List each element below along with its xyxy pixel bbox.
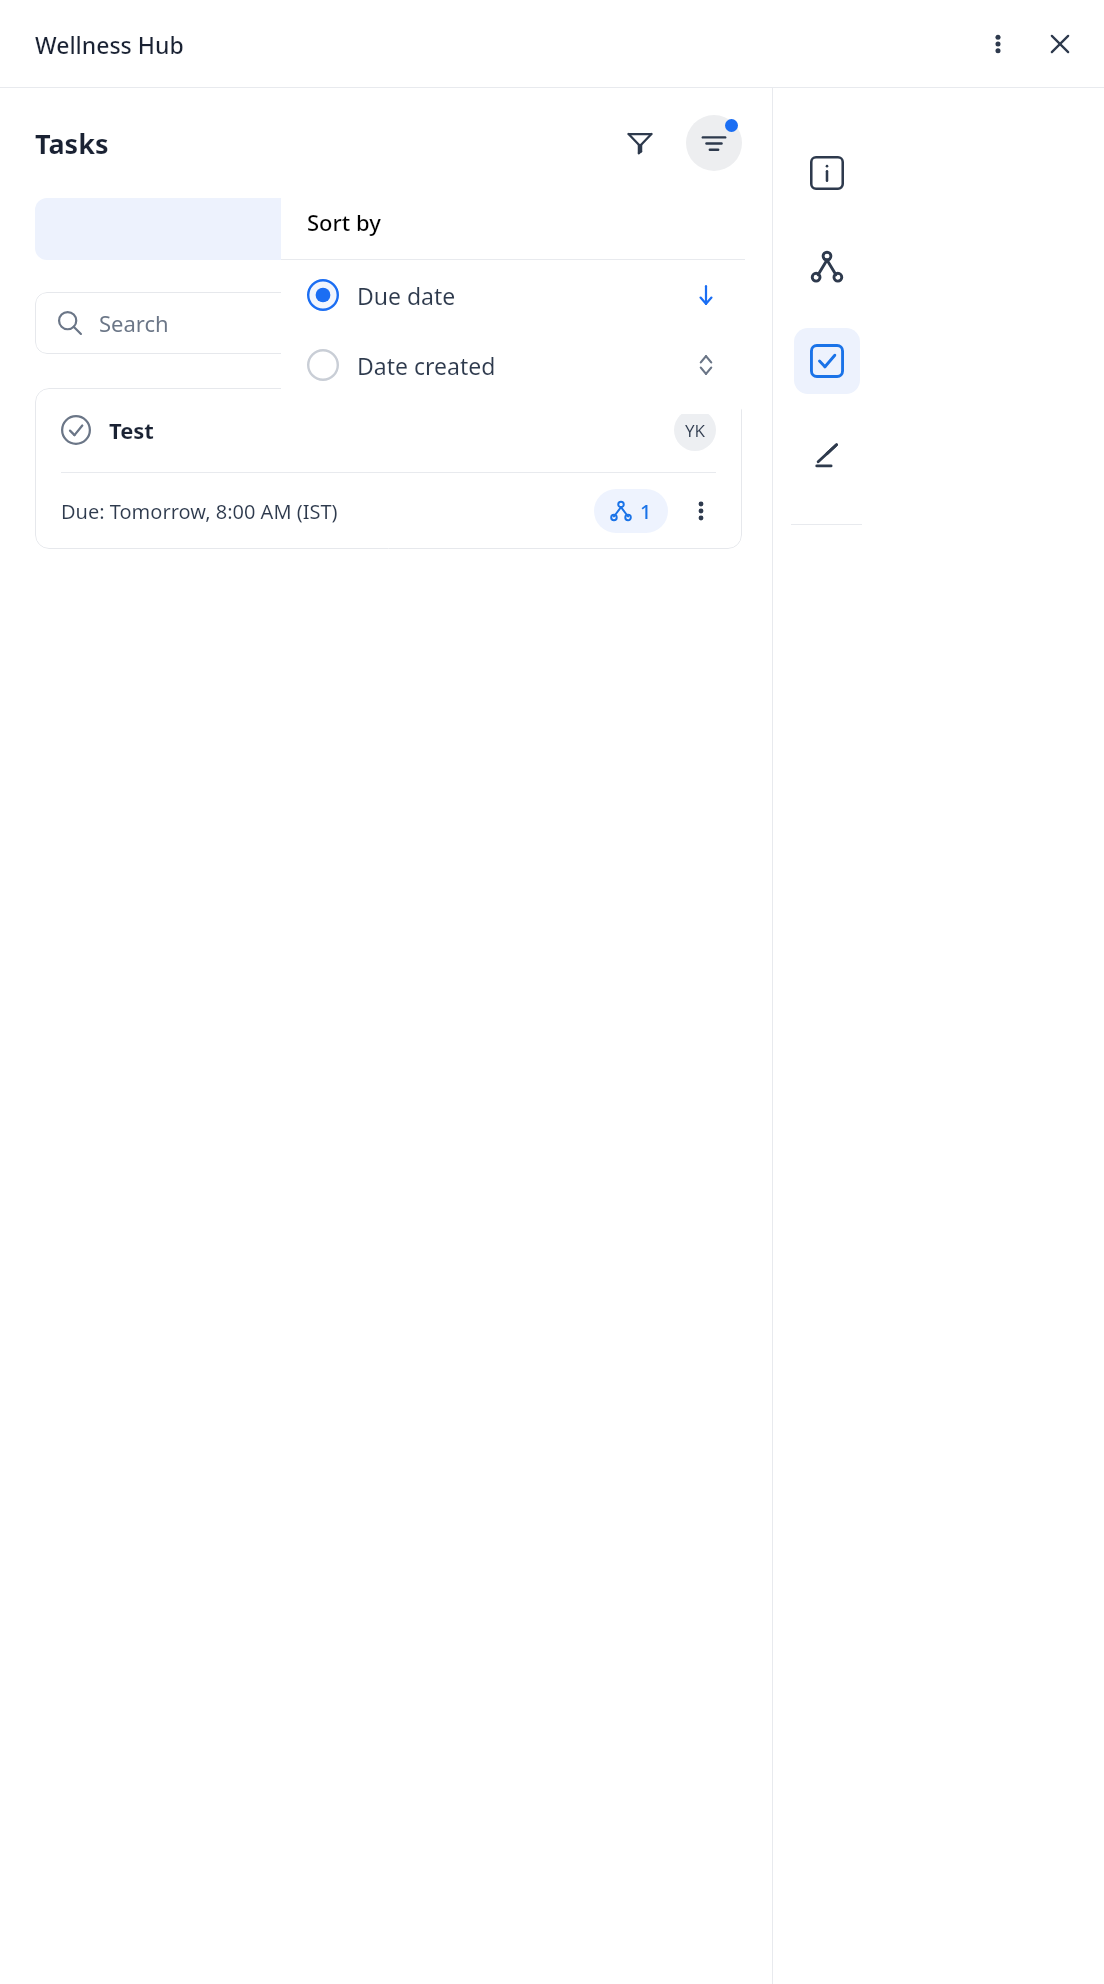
button[interactable]: Date created [281, 330, 745, 400]
button[interactable]: More options [976, 22, 1020, 66]
button[interactable]: Task options [678, 488, 724, 534]
button[interactable]: Info [794, 140, 860, 206]
staticText: YK [685, 419, 706, 442]
button[interactable]: Test [35, 388, 742, 549]
button[interactable]: Share [794, 234, 860, 300]
staticText: Tasks [35, 125, 109, 162]
button[interactable]: Search [35, 292, 742, 354]
button[interactable] [35, 198, 742, 260]
button[interactable]: Sort [686, 115, 742, 171]
button[interactable]: Tasks [794, 328, 860, 394]
staticText: Date created [357, 350, 496, 381]
button[interactable]: 1 [594, 489, 668, 533]
staticText: Sort by [307, 207, 381, 237]
staticText: Due: Tomorrow, 8:00 AM (IST) [61, 498, 338, 525]
staticText: 1 [640, 498, 652, 525]
staticText: Search [99, 308, 169, 338]
staticText: Wellness Hub [35, 29, 184, 60]
staticText: Due date [357, 280, 456, 311]
button[interactable]: Close [1038, 22, 1082, 66]
button[interactable]: Filter [616, 119, 664, 167]
staticText: Test [109, 415, 154, 445]
button[interactable]: Edit [794, 422, 860, 488]
button[interactable]: Due date [281, 260, 745, 330]
